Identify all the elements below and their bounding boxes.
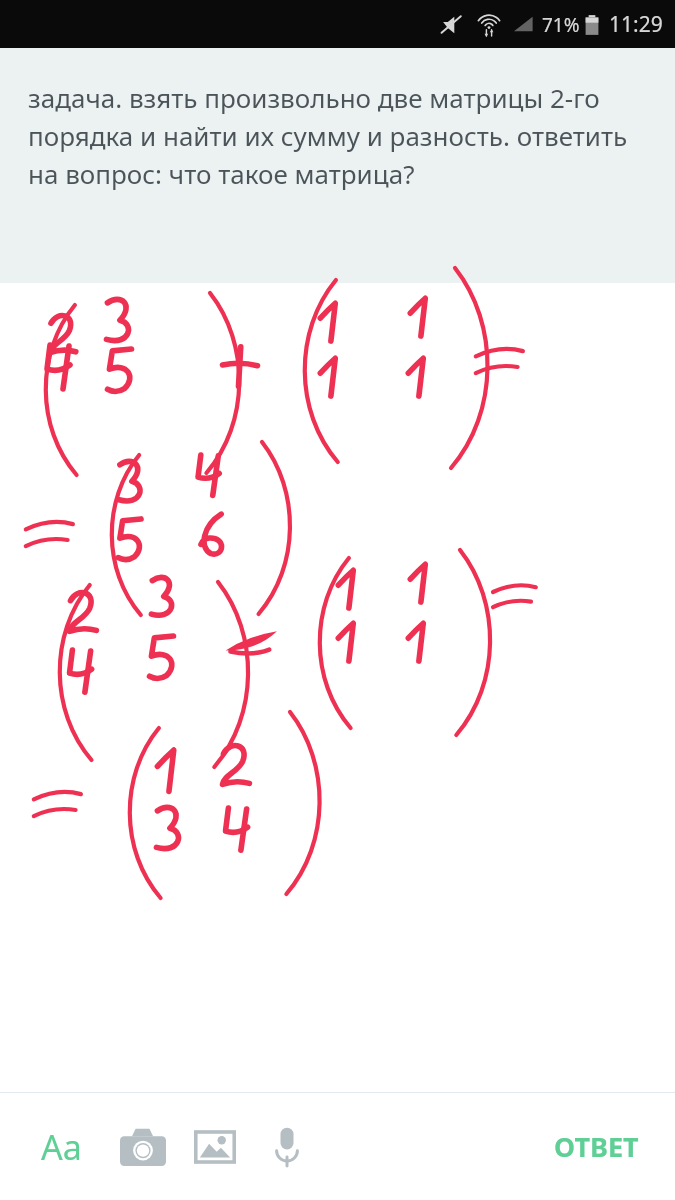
button[interactable]: Aa: [34, 1120, 88, 1174]
staticText: 11:29: [609, 10, 663, 39]
button[interactable]: Voice input: [260, 1120, 314, 1174]
button[interactable]: Take photo: [116, 1120, 170, 1174]
staticText: задача. взять произвольно две матрицы 2-…: [28, 80, 663, 191]
staticText: Aa: [41, 1124, 82, 1170]
staticText: ОТВЕТ: [554, 1128, 639, 1165]
staticText: 71%: [542, 12, 580, 38]
button[interactable]: Choose image: [188, 1120, 242, 1174]
button[interactable]: ОТВЕТ: [546, 1118, 647, 1175]
